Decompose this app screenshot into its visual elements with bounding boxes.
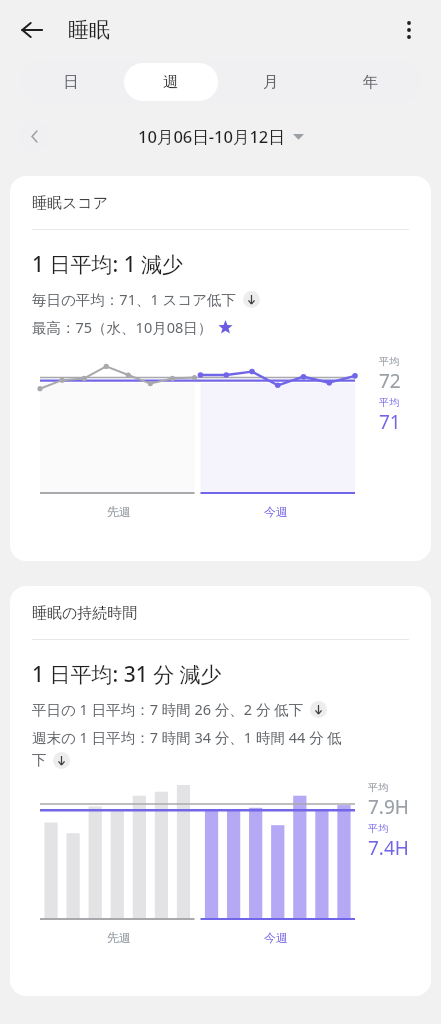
button[interactable]: Back (10, 8, 54, 52)
button[interactable]: 睡眠の持続時間 (10, 586, 431, 996)
staticText: 睡眠 (68, 17, 110, 43)
staticText: 7.9H (368, 794, 409, 820)
staticText: 平均 (368, 822, 388, 835)
button[interactable]: Previous week (18, 120, 50, 152)
button[interactable]: More options (387, 8, 431, 52)
staticText: 最高：75（水、10月08日） (32, 317, 213, 337)
staticText: 下 (32, 751, 47, 769)
staticText: 1 日平均: 1 減少 (32, 250, 184, 279)
staticText: 今週 (264, 504, 288, 519)
staticText: 1 日平均: 31 分 減少 (32, 660, 222, 689)
staticText: 睡眠スコア (32, 194, 109, 213)
staticText: 毎日の平均：71、1 スコア低下 (32, 289, 237, 309)
staticText: 先週 (107, 930, 131, 945)
staticText: 年 (363, 72, 379, 92)
button[interactable]: 週 (124, 63, 218, 101)
staticText: 睡眠の持続時間 (32, 604, 138, 623)
staticText: 週末の 1 日平均：7 時間 34 分、1 時間 44 分 低 (32, 727, 342, 747)
staticText: 日 (63, 72, 79, 92)
staticText: 今週 (264, 930, 288, 945)
staticText: 先週 (107, 504, 131, 519)
staticText: 72 (379, 368, 401, 394)
staticText: 月 (263, 72, 279, 92)
button[interactable]: 睡眠スコア (10, 176, 431, 561)
staticText: 平日の 1 日平均：7 時間 26 分、2 分 低下 (32, 699, 304, 719)
staticText: 週 (163, 72, 179, 92)
staticText: 71 (379, 409, 401, 435)
staticText: 7.4H (368, 835, 409, 861)
staticText: 10月06日-10月12日 (138, 125, 285, 148)
button[interactable]: 10月06日-10月12日 (138, 125, 304, 148)
button[interactable]: 月 (224, 63, 318, 101)
staticText: 平均 (379, 355, 399, 368)
button[interactable]: 年 (324, 63, 418, 101)
button[interactable]: 日 (23, 63, 118, 101)
staticText: 平均 (368, 781, 388, 794)
staticText: 平均 (379, 396, 399, 409)
